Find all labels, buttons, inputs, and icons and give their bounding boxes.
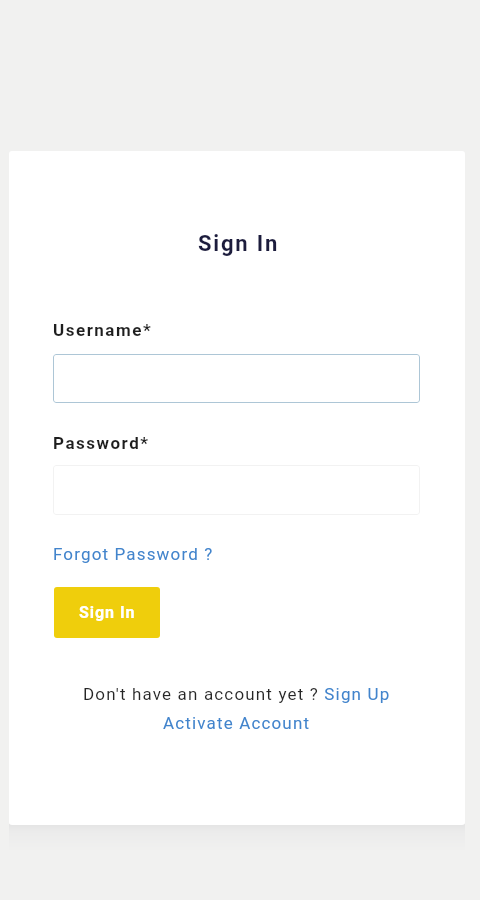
button[interactable]: Sign Up bbox=[319, 684, 391, 704]
staticText: Sign In bbox=[79, 603, 136, 622]
button[interactable]: Forgot Password ? bbox=[53, 544, 214, 564]
staticText: Username* bbox=[53, 320, 153, 340]
button[interactable]: Activate Account bbox=[163, 713, 311, 733]
staticText: Forgot Password ? bbox=[53, 544, 214, 564]
button[interactable]: Sign In bbox=[54, 587, 160, 638]
staticText: Sign Up bbox=[319, 684, 391, 704]
button[interactable]: Username input field bbox=[53, 354, 420, 403]
staticText: Activate Account bbox=[163, 713, 311, 733]
staticText: Sign In bbox=[198, 231, 280, 257]
staticText: Password* bbox=[53, 433, 150, 453]
staticText: Don't have an account yet ? bbox=[83, 684, 319, 704]
